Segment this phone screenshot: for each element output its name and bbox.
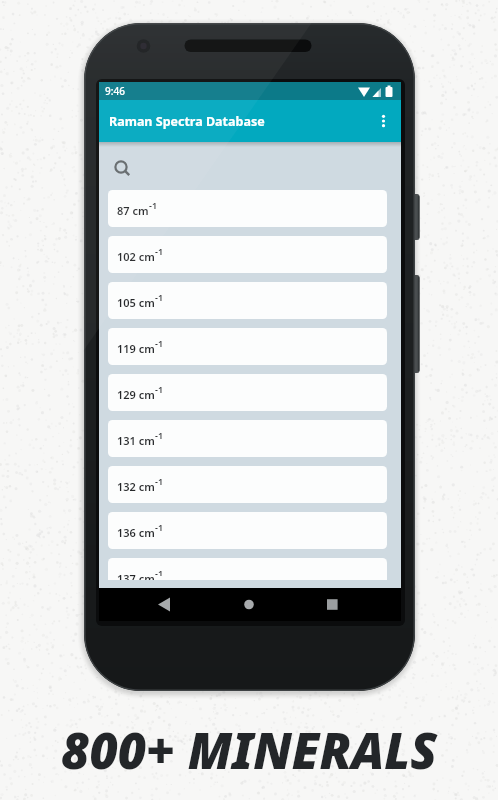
staticText: 131 cm: [117, 433, 155, 448]
button[interactable]: 136 cm: [108, 512, 387, 549]
staticText: 102 cm: [117, 249, 155, 264]
staticText: -1: [155, 429, 164, 441]
staticText: 87 cm: [117, 203, 149, 218]
staticText: -1: [155, 475, 164, 487]
staticText: -1: [155, 521, 164, 533]
button[interactable]: 87 cm: [108, 190, 387, 227]
staticText: -1: [155, 245, 164, 257]
staticText: 800+ MINERALS: [61, 717, 438, 784]
staticText: 105 cm: [117, 295, 155, 310]
staticText: -1: [149, 199, 158, 211]
staticText: 9:46: [105, 84, 125, 98]
staticText: 136 cm: [117, 525, 155, 540]
staticText: -1: [155, 567, 164, 576]
button[interactable]: 137 cm: [108, 558, 387, 580]
button[interactable]: 119 cm: [108, 328, 387, 365]
button[interactable]: [371, 100, 401, 142]
button[interactable]: [312, 588, 352, 621]
button[interactable]: 132 cm: [108, 466, 387, 503]
staticText: -1: [155, 337, 164, 349]
button[interactable]: 105 cm: [108, 282, 387, 319]
button[interactable]: [229, 588, 269, 621]
staticText: 137 cm: [117, 571, 155, 580]
button[interactable]: 129 cm: [108, 374, 387, 411]
staticText: 129 cm: [117, 387, 155, 402]
button[interactable]: 131 cm: [108, 420, 387, 457]
staticText: -1: [155, 383, 164, 395]
button[interactable]: [99, 155, 139, 181]
button[interactable]: 102 cm: [108, 236, 387, 273]
button[interactable]: [144, 588, 184, 621]
staticText: 119 cm: [117, 341, 155, 356]
staticText: 132 cm: [117, 479, 155, 494]
staticText: Raman Spectra Database: [109, 113, 265, 130]
staticText: -1: [155, 291, 164, 303]
